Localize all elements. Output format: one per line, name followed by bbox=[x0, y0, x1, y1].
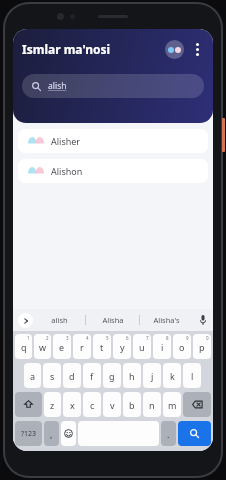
staticText: Alisha bbox=[102, 315, 124, 325]
button[interactable]: . bbox=[161, 421, 176, 446]
staticText: 4 bbox=[86, 335, 89, 341]
staticText: 8 bbox=[166, 335, 169, 341]
button[interactable]: Voice input bbox=[193, 309, 213, 331]
button[interactable]: a bbox=[24, 363, 41, 388]
button[interactable]: alish bbox=[22, 74, 204, 98]
staticText: a bbox=[30, 370, 36, 382]
button[interactable]: b bbox=[123, 392, 141, 417]
button[interactable]: Alisha's bbox=[140, 309, 193, 331]
button[interactable]: f bbox=[83, 363, 101, 388]
button[interactable]: Profile bbox=[165, 40, 184, 59]
staticText: 3 bbox=[66, 335, 69, 341]
staticText: 1 bbox=[27, 335, 30, 341]
staticText: h bbox=[129, 370, 135, 382]
staticText: d bbox=[69, 370, 75, 382]
button[interactable]: i bbox=[153, 334, 171, 359]
button[interactable]: Emoji bbox=[61, 421, 76, 446]
staticText: g bbox=[109, 370, 115, 382]
button[interactable]: d bbox=[63, 363, 81, 388]
staticText: c bbox=[90, 399, 95, 411]
staticText: e bbox=[59, 341, 65, 353]
staticText: , bbox=[50, 428, 53, 440]
button[interactable]: More options bbox=[190, 39, 204, 59]
button[interactable]: x bbox=[63, 392, 81, 417]
button[interactable]: Expand suggestions bbox=[18, 313, 33, 328]
staticText: 9 bbox=[186, 335, 189, 341]
button[interactable]: q bbox=[15, 334, 32, 359]
staticText: alish bbox=[51, 315, 68, 325]
staticText: k bbox=[170, 370, 175, 382]
button[interactable]: p bbox=[193, 334, 211, 359]
button[interactable]: u bbox=[133, 334, 151, 359]
button[interactable]: ?123 bbox=[15, 421, 42, 446]
staticText: l bbox=[191, 370, 194, 382]
staticText: ?123 bbox=[21, 429, 37, 439]
staticText: z bbox=[50, 399, 55, 411]
staticText: s bbox=[50, 370, 55, 382]
button[interactable]: o bbox=[173, 334, 191, 359]
staticText: n bbox=[149, 399, 155, 411]
staticText: u bbox=[139, 341, 145, 353]
button[interactable]: s bbox=[43, 363, 61, 388]
button[interactable]: k bbox=[163, 363, 181, 388]
button[interactable]: z bbox=[44, 392, 61, 417]
button[interactable]: Backspace bbox=[183, 392, 211, 417]
button[interactable]: m bbox=[163, 392, 181, 417]
staticText: Alisher bbox=[51, 135, 81, 147]
button[interactable]: l bbox=[183, 363, 201, 388]
staticText: 0 bbox=[206, 335, 209, 341]
button[interactable]: j bbox=[143, 363, 161, 388]
staticText: Ismlar ma'nosi bbox=[22, 41, 111, 57]
button[interactable]: alish bbox=[33, 309, 85, 331]
button[interactable]: Alisha bbox=[86, 309, 139, 331]
staticText: 5 bbox=[106, 335, 109, 341]
button[interactable]: e bbox=[53, 334, 71, 359]
button[interactable]: r bbox=[73, 334, 91, 359]
staticText: w bbox=[39, 341, 47, 353]
button[interactable]: v bbox=[103, 392, 121, 417]
button[interactable]: n bbox=[143, 392, 161, 417]
button[interactable]: Alishon bbox=[18, 159, 208, 183]
button[interactable]: g bbox=[103, 363, 121, 388]
staticText: y bbox=[120, 341, 125, 353]
button[interactable]: c bbox=[83, 392, 101, 417]
staticText: q bbox=[21, 341, 27, 353]
staticText: x bbox=[70, 399, 75, 411]
staticText: j bbox=[151, 370, 154, 382]
staticText: 6 bbox=[126, 335, 129, 341]
staticText: i bbox=[161, 341, 164, 353]
staticText: Alisha's bbox=[153, 315, 180, 325]
button[interactable]: y bbox=[113, 334, 131, 359]
button[interactable]: Search bbox=[178, 421, 211, 446]
button[interactable]: t bbox=[93, 334, 111, 359]
button[interactable]: h bbox=[123, 363, 141, 388]
staticText: alish bbox=[48, 80, 67, 92]
button[interactable]: Alisher bbox=[18, 129, 208, 153]
staticText: b bbox=[129, 399, 135, 411]
staticText: o bbox=[179, 341, 185, 353]
button[interactable]: , bbox=[44, 421, 59, 446]
staticText: 7 bbox=[146, 335, 149, 341]
staticText: t bbox=[100, 341, 104, 353]
staticText: m bbox=[168, 399, 177, 411]
button[interactable]: Shift bbox=[15, 392, 42, 417]
staticText: p bbox=[199, 341, 205, 353]
staticText: v bbox=[110, 399, 115, 411]
staticText: . bbox=[167, 428, 170, 440]
staticText: 2 bbox=[46, 335, 49, 341]
staticText: f bbox=[90, 370, 94, 382]
staticText: r bbox=[80, 341, 84, 353]
staticText: Alishon bbox=[51, 165, 83, 177]
button[interactable]: w bbox=[34, 334, 51, 359]
